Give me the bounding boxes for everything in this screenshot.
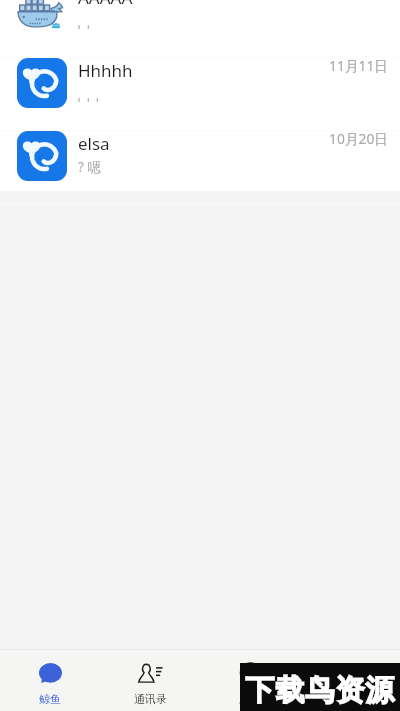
button[interactable]: AAAAA [0,0,400,58]
staticText: 鲸鱼 [39,692,61,706]
button[interactable]: 鲸鱼 [0,650,100,706]
staticText: AAAAA [78,0,133,9]
button[interactable]: 我 [300,650,400,706]
staticText: 下载鸟资源 [245,672,395,709]
button[interactable]: 通讯录 [100,650,200,706]
staticText: 我 [345,692,356,706]
staticText: Hhhhh [78,59,133,82]
staticText: ? 嗯 [78,158,101,176]
staticText: ˌ ˌ ˌ [78,85,99,103]
staticText: 通讯录 [134,692,167,706]
staticText: 发现 [239,692,261,706]
staticText: elsa [78,132,110,155]
button[interactable]: Hhhhh [0,58,400,131]
staticText: 10月20日 [329,129,389,148]
staticText: 11月11日 [329,56,389,75]
button[interactable]: 发现 [200,650,300,706]
button[interactable]: elsa [0,131,400,204]
staticText: ˌ ˌ [78,12,90,30]
